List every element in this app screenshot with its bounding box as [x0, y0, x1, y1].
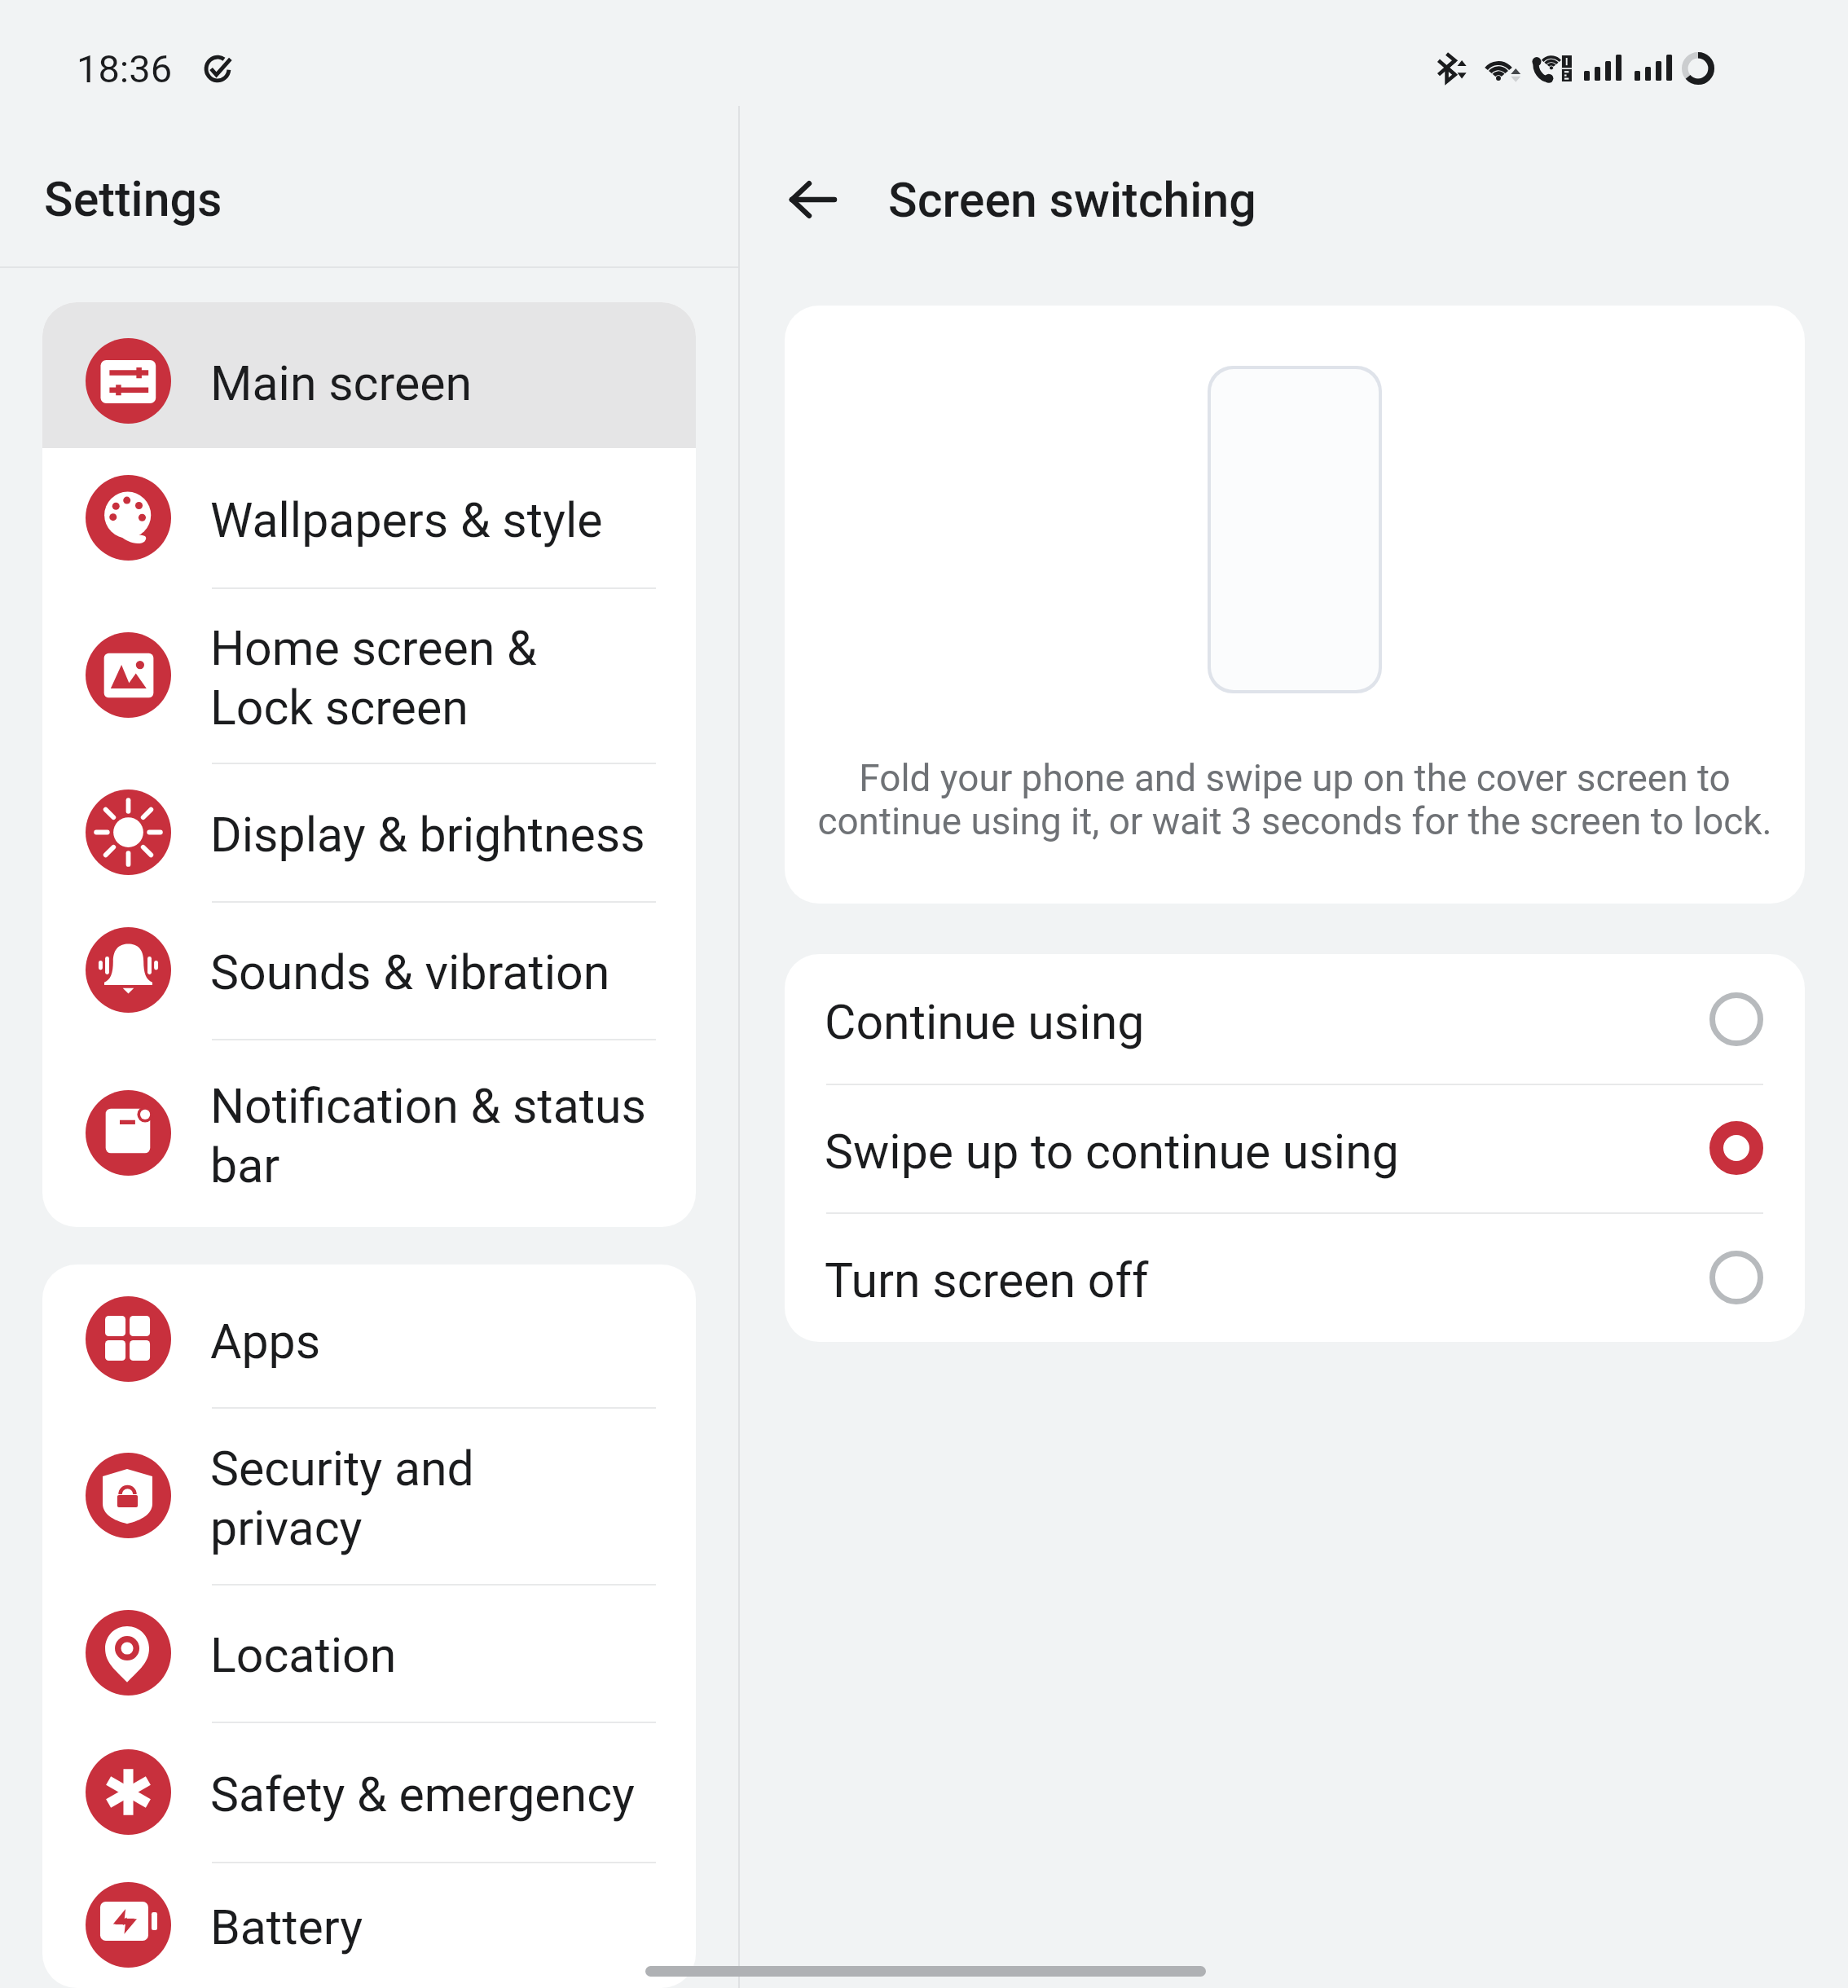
staticText: Continue using [825, 994, 1709, 1050]
staticText: 18:36 [77, 46, 173, 91]
staticText: Apps [210, 1313, 667, 1370]
staticText: Turn screen off [825, 1252, 1709, 1308]
staticText: Location [210, 1627, 667, 1683]
staticText: Swipe up to continue using [825, 1124, 1709, 1180]
button[interactable]: Back [768, 155, 857, 244]
staticText: Fold your phone and swipe up on the cove… [804, 756, 1785, 844]
staticText: Display & brightness [210, 807, 667, 863]
button[interactable]: Display & brightness [42, 763, 696, 901]
staticText: Notification & status bar [210, 1078, 667, 1194]
button[interactable]: Wallpapers & style [42, 448, 696, 587]
button[interactable]: Safety & emergency [42, 1722, 696, 1862]
staticText: Main screen [210, 355, 667, 411]
button[interactable]: Security and privacy [42, 1407, 696, 1584]
staticText: Settings [44, 171, 222, 227]
button[interactable]: Location [42, 1584, 696, 1722]
staticText: Home screen & Lock screen [210, 620, 667, 736]
button[interactable]: Sounds & vibration [42, 901, 696, 1039]
button[interactable]: Home screen & Lock screen [42, 587, 696, 763]
button[interactable]: Apps [42, 1270, 696, 1407]
button[interactable]: Notification & status bar [42, 1039, 696, 1227]
button[interactable]: Battery [42, 1862, 696, 1988]
staticText: Safety & emergency [210, 1766, 667, 1823]
button[interactable]: Swipe up to continue using [785, 1084, 1805, 1212]
staticText: Wallpapers & style [210, 492, 667, 548]
button[interactable]: Continue using [785, 954, 1805, 1084]
staticText: Screen switching [888, 172, 1256, 228]
button[interactable]: Turn screen off [785, 1212, 1805, 1342]
staticText: Sounds & vibration [210, 944, 667, 1001]
button[interactable]: Main screen [42, 314, 696, 448]
staticText: Security and privacy [210, 1440, 667, 1556]
staticText: Battery [210, 1899, 667, 1955]
